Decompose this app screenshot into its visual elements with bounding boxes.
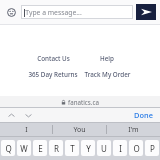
staticText: U — [101, 143, 107, 154]
button[interactable]: W — [17, 140, 31, 156]
staticText: O — [133, 143, 140, 154]
button[interactable]: You — [53, 123, 106, 136]
staticText: R — [54, 143, 59, 154]
button[interactable]: Type a message... — [21, 5, 133, 19]
button[interactable]: I — [113, 140, 127, 156]
button[interactable]: E — [33, 140, 47, 156]
staticText: Track My Order — [84, 70, 131, 79]
staticText: T — [70, 143, 75, 154]
button[interactable]: Done — [132, 109, 155, 121]
button[interactable]: 365 Day Returns — [27, 69, 79, 80]
staticText: Help — [100, 54, 114, 63]
staticText: 365 Day Returns — [28, 70, 78, 79]
staticText: I — [25, 125, 28, 135]
staticText: You — [73, 125, 86, 135]
button[interactable]: Q — [1, 140, 15, 156]
staticText: W — [20, 143, 28, 154]
button[interactable]: I'm — [107, 123, 160, 136]
staticText: Type a message... — [25, 8, 82, 17]
staticText: E — [38, 143, 43, 154]
staticText: I'm — [128, 125, 139, 135]
button[interactable]: Emoji — [4, 5, 18, 19]
button[interactable]: Next field — [22, 109, 34, 121]
staticText: fanatics.ca — [68, 98, 99, 106]
staticText: Q — [5, 143, 12, 154]
button[interactable]: R — [49, 140, 63, 156]
button[interactable]: Contact Us — [36, 53, 71, 64]
staticText: Y — [86, 143, 91, 154]
button[interactable]: Previous field — [5, 109, 17, 121]
staticText: Done — [134, 110, 153, 120]
button[interactable]: Help — [99, 53, 115, 64]
staticText: Contact Us — [37, 54, 70, 63]
button[interactable]: I — [0, 123, 52, 136]
button[interactable]: P — [145, 140, 159, 156]
button[interactable]: T — [65, 140, 79, 156]
button[interactable]: Y — [81, 140, 95, 156]
button[interactable]: U — [97, 140, 111, 156]
button[interactable]: Send — [136, 4, 156, 20]
button[interactable]: O — [129, 140, 143, 156]
staticText: P — [150, 143, 155, 154]
staticText: I — [119, 143, 122, 154]
button[interactable]: Track My Order — [83, 69, 132, 80]
